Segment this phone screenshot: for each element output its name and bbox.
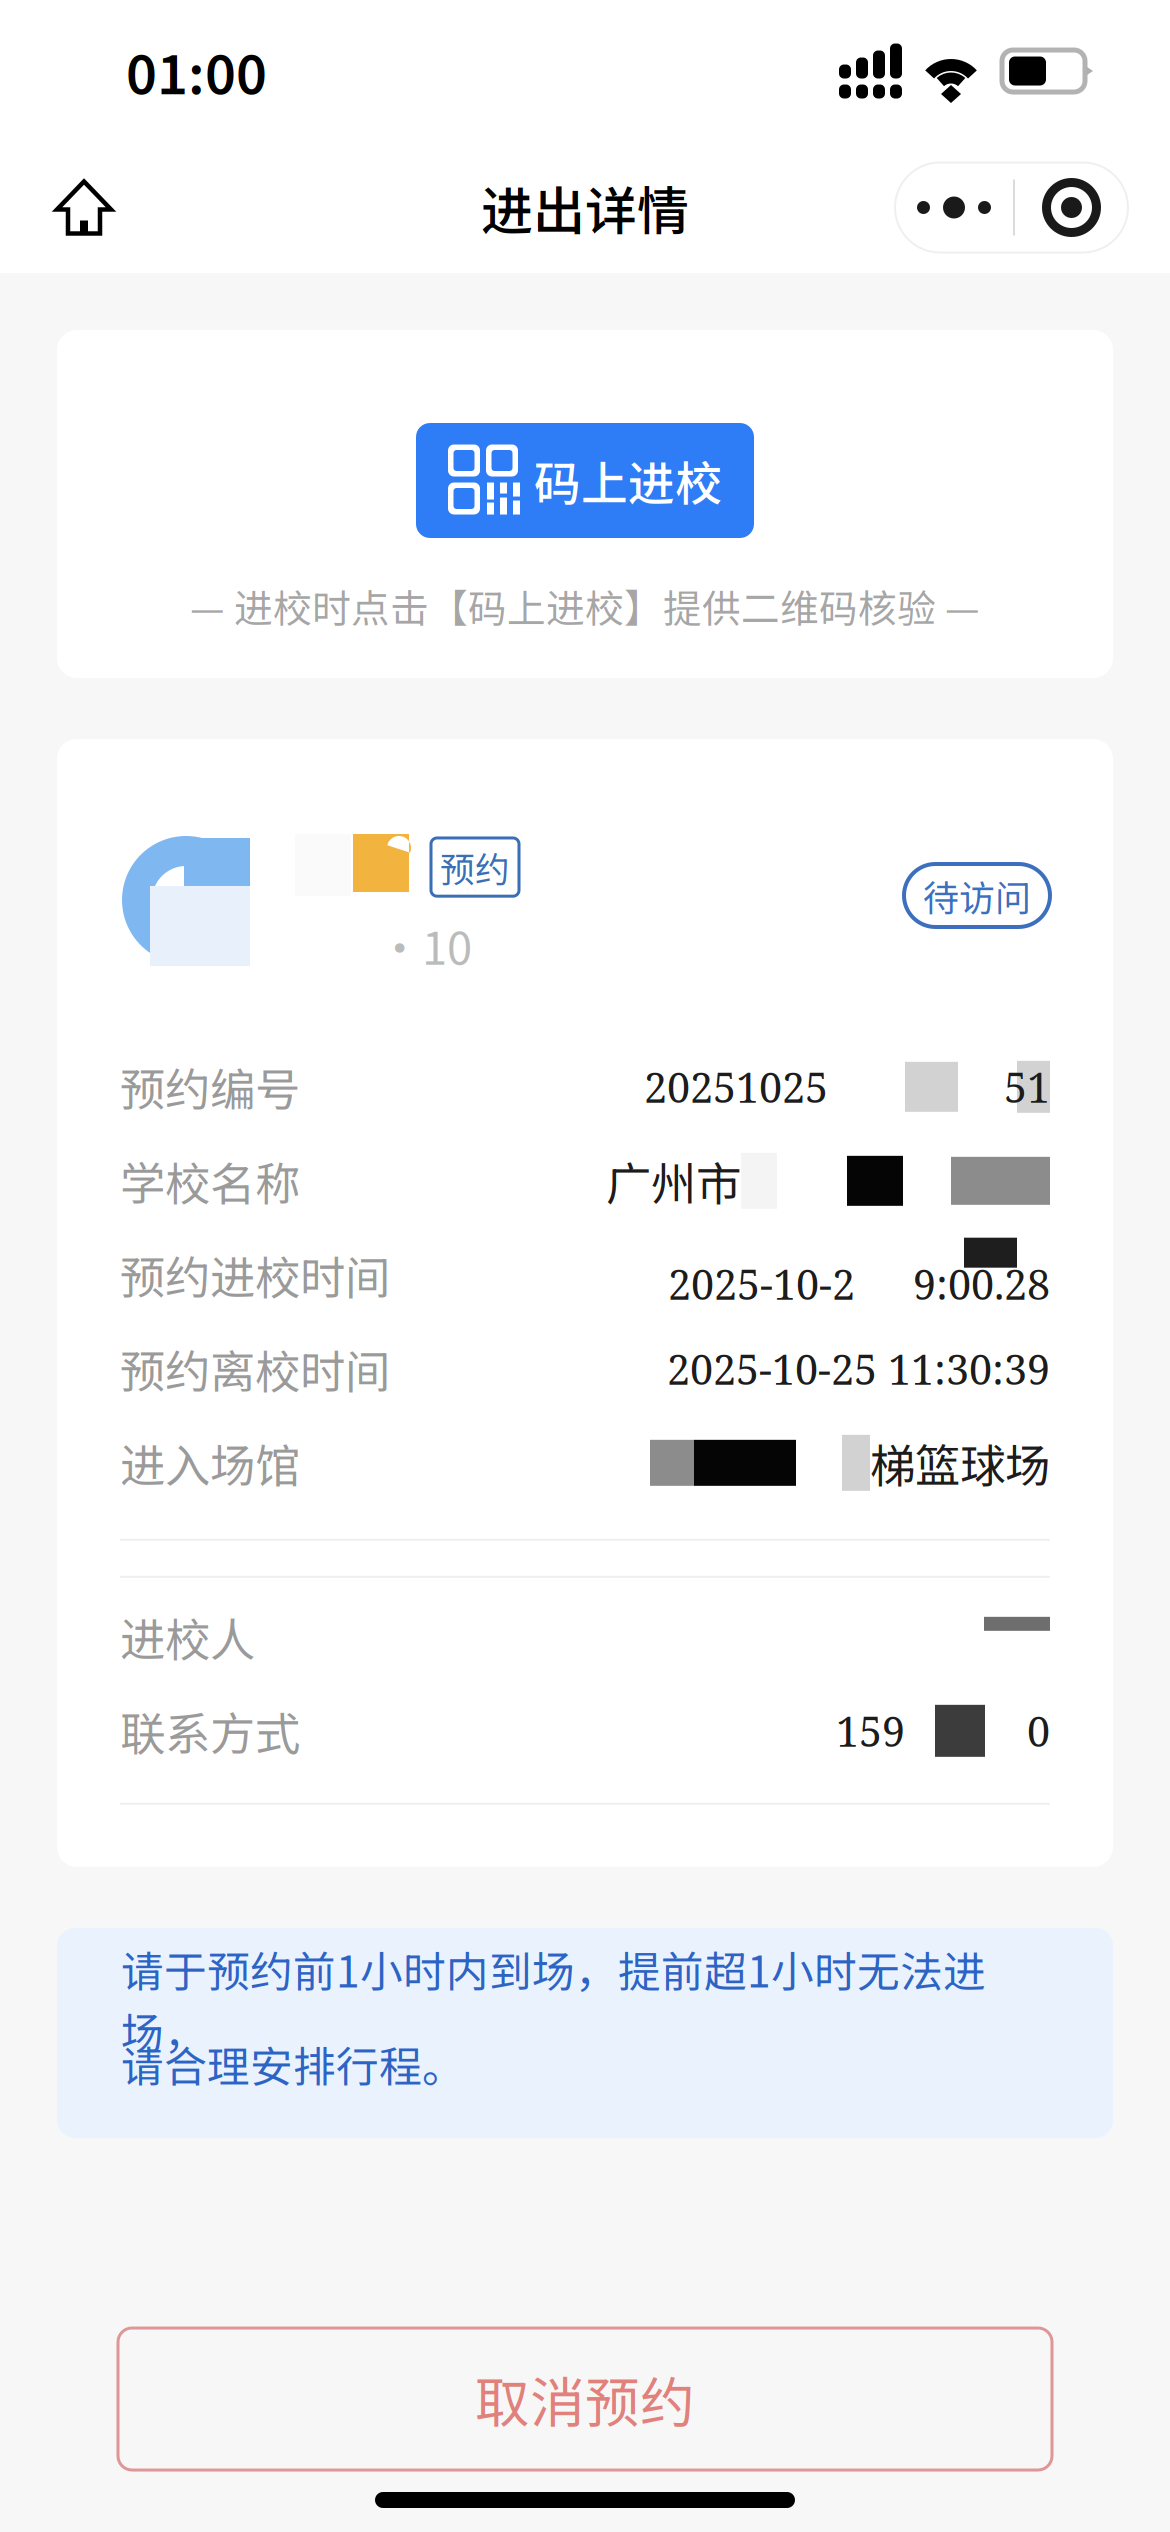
staticText: 01:00	[126, 32, 267, 110]
staticText: ·10	[377, 912, 472, 978]
staticText: 学校名称	[120, 1148, 300, 1214]
staticText: 预约编号	[120, 1054, 300, 1120]
staticText: 码上进校	[534, 447, 722, 514]
button[interactable]: 首页	[0, 158, 137, 256]
button[interactable]: 码上进校	[416, 423, 754, 538]
staticText: 请合理安排行程。	[121, 2033, 465, 2095]
staticText: 待访问	[923, 869, 1031, 921]
staticText: 请于预约前1小时内到场，提前超1小时无法进场，	[121, 1938, 986, 2062]
staticText: 2025-10-25 11:30:39	[667, 1341, 1050, 1397]
button[interactable]: 取消预约	[118, 2328, 1052, 2470]
staticText: 0	[1027, 1703, 1050, 1759]
staticText: 20251025	[644, 1059, 828, 1115]
button[interactable]: 更多菜单	[895, 162, 1128, 252]
staticText: 取消预约	[475, 2359, 695, 2439]
staticText: 进校人	[120, 1604, 255, 1670]
staticText: 梯篮球场	[870, 1430, 1050, 1496]
staticText: 9:00.28	[913, 1256, 1050, 1312]
staticText: 联系方式	[120, 1698, 300, 1764]
staticText: 预约离校时间	[120, 1336, 390, 1402]
staticText: 51	[1004, 1059, 1050, 1115]
staticText: 进出详情	[481, 170, 689, 245]
staticText: — 进校时点击【码上进校】提供二维码核验 —	[190, 578, 980, 634]
staticText: 广州市	[606, 1148, 741, 1214]
staticText: 预约进校时间	[120, 1242, 390, 1308]
staticText: 预约	[440, 842, 510, 892]
staticText: 2025-10-2	[668, 1256, 855, 1312]
staticText: 159	[836, 1703, 905, 1759]
staticText: 进入场馆	[120, 1430, 300, 1496]
